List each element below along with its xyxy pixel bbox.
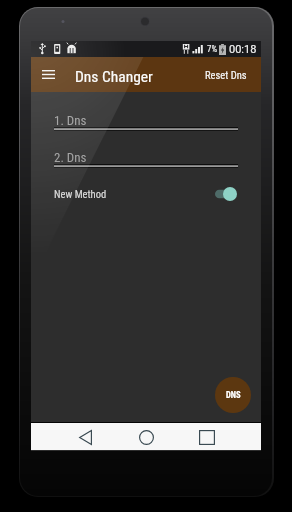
button[interactable]: DNS bbox=[215, 377, 251, 413]
button[interactable]: 1. Dns bbox=[54, 109, 238, 131]
staticText: Dns Changer bbox=[75, 68, 153, 86]
button[interactable]: Home bbox=[132, 429, 160, 445]
button[interactable]: Reset Dns bbox=[199, 61, 253, 89]
staticText: 2. Dns bbox=[54, 150, 87, 165]
button[interactable]: Back bbox=[71, 429, 99, 445]
button[interactable]: Open navigation menu bbox=[42, 70, 55, 79]
staticText: DNS bbox=[226, 390, 241, 400]
button[interactable]: New Method switch, on bbox=[215, 186, 238, 202]
staticText: Reset Dns bbox=[205, 69, 247, 81]
staticText: 1. Dns bbox=[54, 113, 87, 128]
button[interactable]: 2. Dns bbox=[54, 146, 238, 168]
staticText: 00:18 bbox=[229, 43, 257, 56]
staticText: 7% bbox=[207, 44, 218, 55]
button[interactable]: Recent apps bbox=[193, 429, 221, 445]
staticText: New Method bbox=[54, 188, 107, 200]
